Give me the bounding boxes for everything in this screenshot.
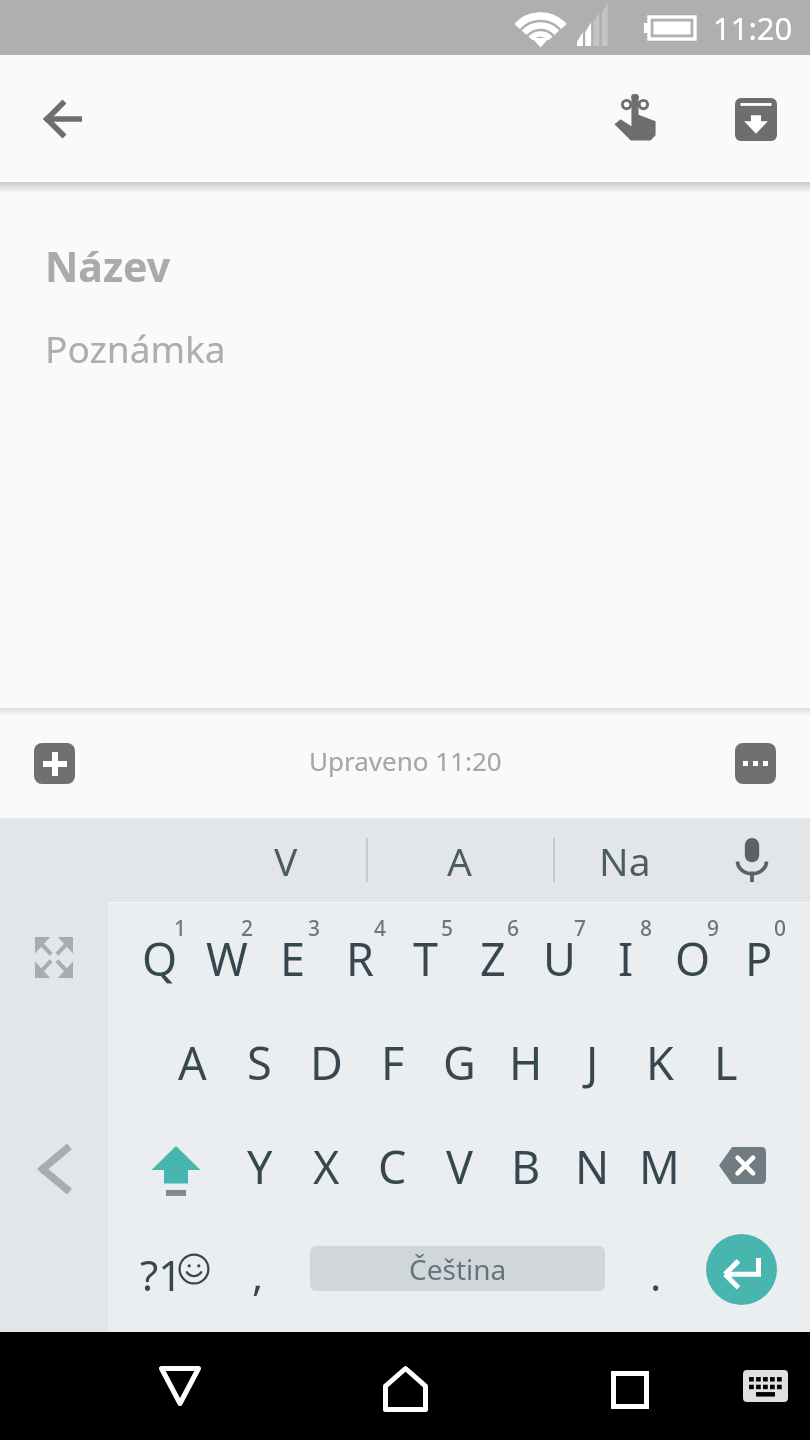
staticText: G [443, 1032, 476, 1093]
staticText: 8 [640, 914, 653, 940]
button[interactable]: Add [34, 743, 75, 784]
button[interactable]: Y [226, 1134, 293, 1204]
staticText: M [639, 1136, 680, 1197]
button[interactable]: Shift [126, 1134, 226, 1204]
button[interactable]: Reminder [597, 79, 673, 155]
staticText: Y [247, 1136, 273, 1197]
button[interactable]: F [359, 1030, 426, 1100]
staticText: E [280, 928, 306, 989]
staticText: N [575, 1136, 610, 1197]
button[interactable]: J [559, 1030, 626, 1100]
staticText: C [378, 1136, 407, 1197]
staticText: A [178, 1032, 207, 1093]
staticText: 9 [707, 914, 720, 940]
button[interactable]: N [559, 1134, 626, 1204]
button[interactable]: Symbols and emoji [126, 1234, 218, 1302]
staticText: 2 [241, 914, 254, 940]
staticText: H [509, 1032, 543, 1093]
button[interactable]: Backspace [692, 1130, 792, 1200]
staticText: Na [599, 834, 651, 887]
staticText: A [447, 834, 472, 887]
button[interactable]: A [379, 818, 539, 902]
button[interactable]: Home [370, 1354, 440, 1424]
staticText: 11:20 [713, 7, 793, 49]
button[interactable]: Voice input [707, 818, 797, 902]
staticText: S [247, 1032, 272, 1093]
button[interactable]: B [492, 1134, 559, 1204]
button[interactable]: C [359, 1134, 426, 1204]
staticText: V [446, 1136, 474, 1197]
button[interactable]: Hide keyboard [730, 1351, 800, 1421]
button[interactable]: More options [735, 743, 776, 784]
staticText: F [381, 1032, 405, 1093]
button[interactable]: Enter [706, 1234, 777, 1305]
button[interactable]: Recent apps [595, 1355, 665, 1425]
button[interactable]: P [725, 926, 792, 996]
button[interactable]: D [293, 1030, 360, 1100]
button[interactable]: Period [628, 1234, 686, 1302]
button[interactable]: U [526, 926, 593, 996]
staticText: 1 [174, 914, 187, 940]
staticText: Poznámka [45, 323, 226, 373]
button[interactable]: A [159, 1030, 226, 1100]
staticText: R [346, 928, 374, 989]
button[interactable]: L [692, 1030, 759, 1100]
button[interactable]: W [193, 926, 260, 996]
button[interactable]: R [326, 926, 393, 996]
staticText: 3 [308, 914, 321, 940]
staticText: O [675, 928, 711, 989]
button[interactable]: H [492, 1030, 559, 1100]
staticText: 4 [374, 914, 387, 940]
button[interactable]: K [626, 1030, 693, 1100]
staticText: ?1 [140, 1246, 183, 1303]
staticText: V [274, 834, 298, 887]
staticText: D [310, 1032, 343, 1093]
button[interactable]: T [392, 926, 459, 996]
button[interactable]: Archive [718, 81, 794, 157]
button[interactable]: Čeština [310, 1246, 605, 1291]
staticText: J [586, 1032, 599, 1093]
staticText: 5 [441, 914, 454, 940]
button[interactable]: V [426, 1134, 493, 1204]
button[interactable]: G [426, 1030, 493, 1100]
button[interactable]: Back [145, 1351, 215, 1421]
button[interactable]: V [206, 818, 366, 902]
staticText: , [252, 1246, 264, 1303]
staticText: 7 [574, 914, 587, 940]
staticText: P [745, 928, 773, 989]
staticText: X [313, 1136, 340, 1197]
button[interactable]: X [293, 1134, 360, 1204]
staticText: . [650, 1246, 662, 1303]
button[interactable]: Expand keyboard [14, 917, 94, 997]
staticText: L [714, 1032, 738, 1093]
staticText: I [618, 928, 634, 989]
staticText: K [646, 1032, 674, 1093]
button[interactable]: Back [24, 83, 102, 155]
button[interactable]: S [226, 1030, 293, 1100]
button[interactable]: I [592, 926, 659, 996]
button[interactable]: Q [126, 926, 193, 996]
button[interactable]: Previous [14, 1129, 94, 1209]
button[interactable]: Na [545, 818, 705, 902]
staticText: 6 [507, 914, 520, 940]
button[interactable]: Z [459, 926, 526, 996]
staticText: Z [480, 928, 506, 989]
staticText: Q [142, 928, 178, 989]
staticText: 0 [774, 914, 787, 940]
staticText: Upraveno 11:20 [309, 743, 502, 778]
staticText: W [206, 928, 248, 989]
staticText: B [511, 1136, 541, 1197]
button[interactable]: E [259, 926, 326, 996]
staticText: Název [45, 238, 171, 294]
button[interactable]: M [626, 1134, 693, 1204]
button[interactable]: Comma [230, 1234, 288, 1302]
staticText: T [413, 928, 439, 989]
button[interactable]: O [659, 926, 726, 996]
staticText: Čeština [409, 1250, 507, 1288]
staticText: U [543, 928, 576, 989]
